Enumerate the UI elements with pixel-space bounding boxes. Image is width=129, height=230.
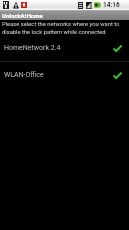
staticText: WLAN-Office: [4, 71, 44, 79]
staticText: HomeNetwork 2.4: [4, 44, 61, 52]
other: Selected: [113, 45, 122, 52]
button[interactable]: WLAN-Office: [0, 62, 129, 88]
staticText: UnlockAtHome: [2, 12, 43, 19]
staticText: Please select the networks where you wan…: [2, 21, 127, 35]
button[interactable]: HomeNetwork 2.4: [0, 35, 129, 61]
staticText: 14:16: [103, 1, 120, 9]
other: Selected: [113, 72, 122, 79]
